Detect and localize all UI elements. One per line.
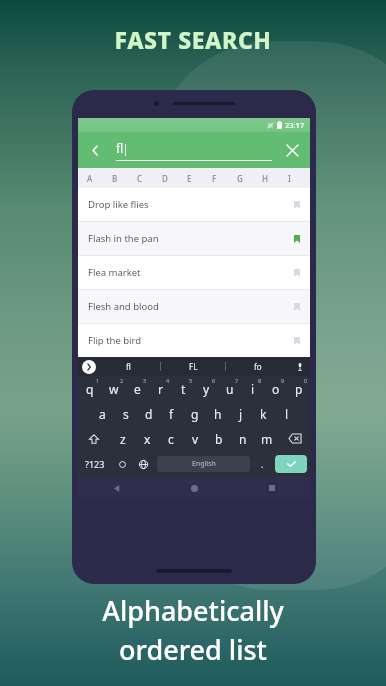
button[interactable]: v [183, 426, 207, 451]
staticText: r [158, 381, 163, 397]
staticText: English [192, 459, 216, 469]
staticText: t [181, 381, 186, 397]
button[interactable]: C [127, 168, 152, 188]
button[interactable]: z [110, 426, 135, 451]
button[interactable]: d [137, 401, 160, 426]
staticText: FL [189, 361, 198, 372]
button[interactable]: s [114, 401, 137, 426]
button[interactable]: j [229, 401, 252, 426]
staticText: Flea market [88, 266, 294, 279]
staticText: z [120, 431, 126, 447]
staticText: Alphabetically [102, 592, 284, 629]
button[interactable]: Home [156, 477, 233, 499]
button[interactable]: p [287, 376, 310, 401]
button[interactable]: q [78, 376, 102, 401]
staticText: 5 [189, 377, 193, 384]
staticText: h [214, 406, 222, 422]
staticText: fl [116, 140, 124, 156]
button[interactable]: H [252, 168, 277, 188]
staticText: i [251, 381, 255, 397]
staticText: j [239, 406, 243, 422]
staticText: 9 [281, 377, 285, 384]
button[interactable]: c [159, 426, 183, 451]
staticText: a [99, 406, 106, 422]
button[interactable]: Recent apps [233, 477, 310, 499]
button[interactable]: b [207, 426, 231, 451]
staticText: d [145, 406, 153, 422]
staticText: u [226, 381, 234, 397]
button[interactable]: u [218, 376, 241, 401]
button[interactable]: Drop like flies [78, 188, 310, 221]
staticText: . [261, 458, 264, 470]
button[interactable]: Enter [275, 455, 307, 473]
staticText: Flesh and blood [88, 300, 294, 313]
staticText: 6 [212, 377, 216, 384]
button[interactable]: x [135, 426, 159, 451]
button[interactable]: Flesh and blood [78, 290, 310, 323]
staticText: 1 [96, 377, 100, 384]
button[interactable]: Change language [133, 451, 154, 477]
button[interactable]: a [91, 401, 114, 426]
button[interactable]: Backspace [279, 426, 310, 451]
button[interactable]: g [183, 401, 206, 426]
staticText: B [112, 173, 118, 184]
staticText: Flash in the pan [88, 232, 294, 245]
button[interactable]: ?123 [78, 451, 112, 477]
staticText: H [262, 173, 268, 184]
button[interactable]: Voice input [290, 357, 310, 376]
staticText: E [187, 173, 192, 184]
button[interactable]: k [252, 401, 275, 426]
button[interactable]: Clear search [282, 140, 302, 160]
button[interactable]: m [255, 426, 279, 451]
button[interactable]: Flash in the pan [78, 222, 310, 255]
staticText: o [272, 381, 280, 397]
staticText: I [288, 173, 291, 184]
button[interactable]: fl [96, 357, 160, 376]
button[interactable]: F [202, 168, 227, 188]
button[interactable]: D [152, 168, 177, 188]
staticText: b [215, 431, 223, 447]
button[interactable]: . [253, 451, 272, 477]
button[interactable]: Flip the bird [78, 324, 310, 357]
button[interactable]: I [277, 168, 302, 188]
staticText: 3 [143, 377, 147, 384]
button[interactable]: A [78, 168, 102, 188]
staticText: ?123 [85, 458, 105, 470]
button[interactable]: e [126, 376, 149, 401]
staticText: k [260, 406, 267, 422]
button[interactable]: l [275, 401, 298, 426]
button[interactable]: Back [86, 141, 104, 159]
button[interactable]: i [241, 376, 264, 401]
staticText: 23:17 [285, 120, 305, 130]
staticText: g [191, 406, 199, 422]
button[interactable]: n [231, 426, 255, 451]
button[interactable]: Shift [78, 426, 110, 451]
button[interactable]: More suggestions [82, 360, 96, 374]
button[interactable]: t [172, 376, 195, 401]
staticText: n [239, 431, 247, 447]
staticText: C [137, 173, 143, 184]
button[interactable]: Flea market [78, 256, 310, 289]
button[interactable]: G [227, 168, 252, 188]
staticText: G [237, 173, 243, 184]
staticText: fo [254, 361, 262, 372]
staticText: m [261, 431, 273, 447]
button[interactable]: w [102, 376, 126, 401]
button[interactable]: FL [161, 357, 225, 376]
staticText: c [168, 431, 174, 447]
button[interactable]: fo [226, 357, 290, 376]
button[interactable]: h [206, 401, 229, 426]
button[interactable]: r [149, 376, 172, 401]
button[interactable]: o [264, 376, 287, 401]
button[interactable]: English [157, 456, 250, 472]
button[interactable]: Back [78, 477, 156, 499]
staticText: w [109, 381, 119, 397]
button[interactable]: y [195, 376, 218, 401]
button[interactable]: E [177, 168, 202, 188]
staticText: v [192, 431, 199, 447]
button[interactable]: f [160, 401, 183, 426]
staticText: y [203, 381, 210, 397]
button[interactable]: Emoji [112, 451, 133, 477]
button[interactable]: B [102, 168, 127, 188]
staticText: s [123, 406, 129, 422]
